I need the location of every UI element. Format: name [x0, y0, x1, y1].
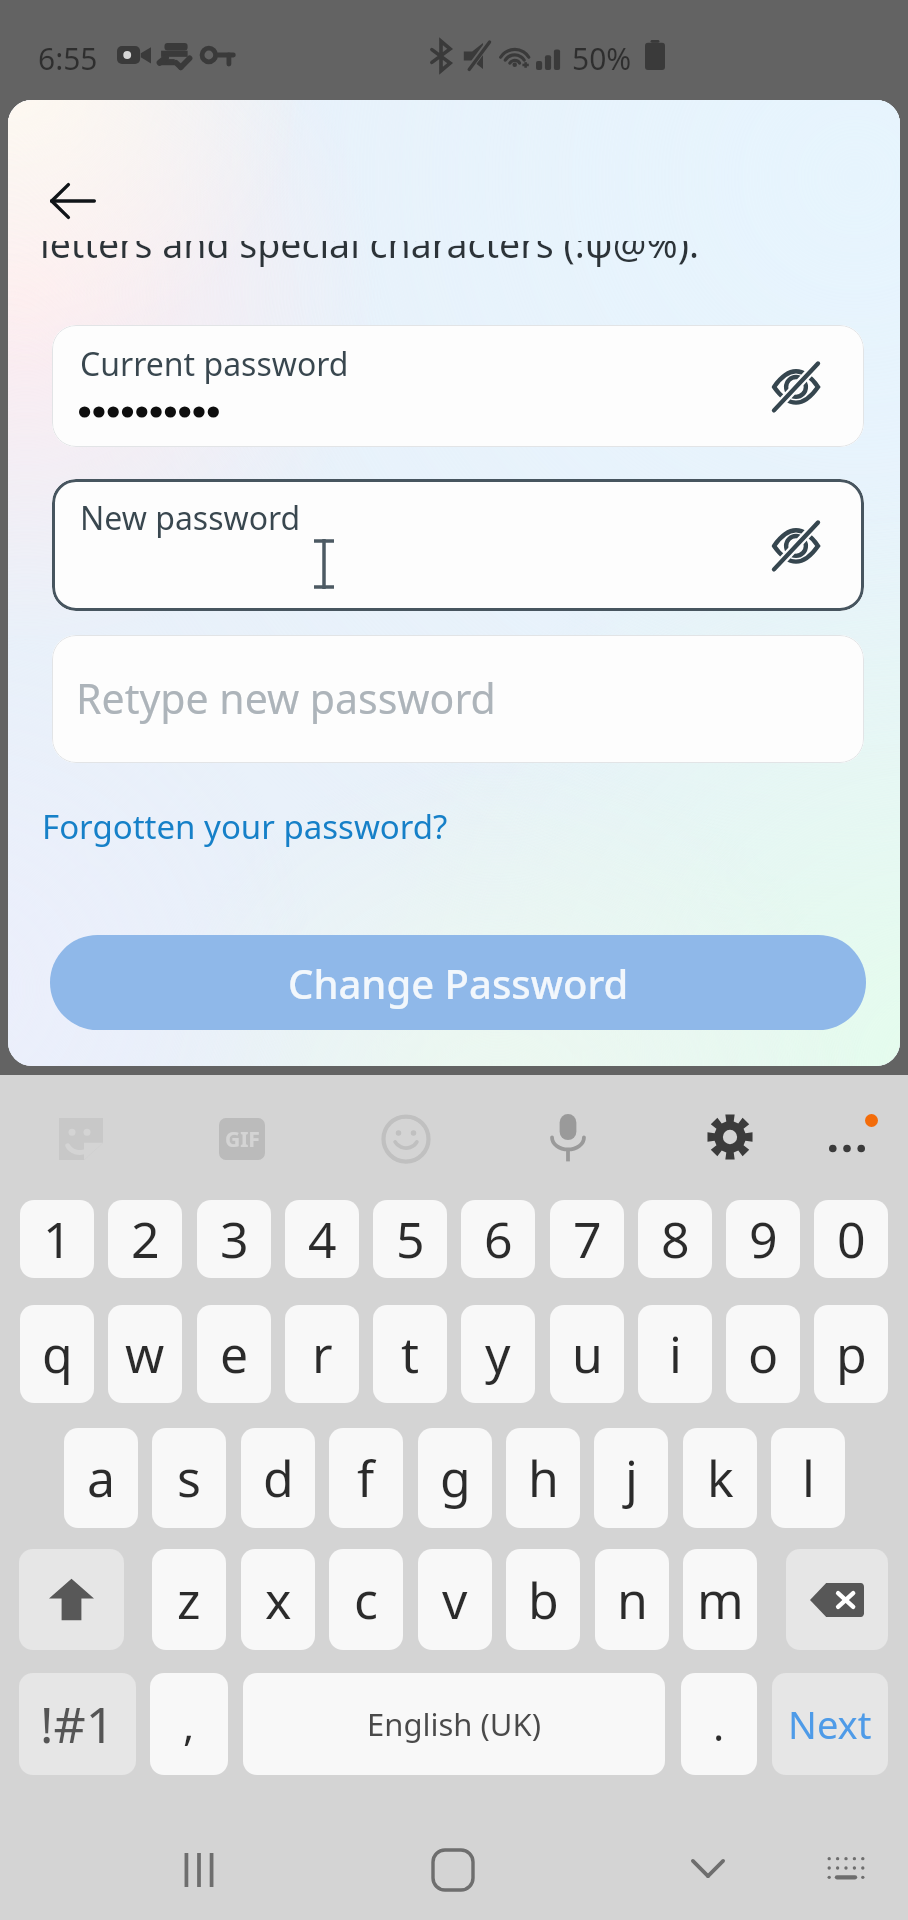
- staticText: 6: [484, 1205, 513, 1273]
- staticText: b: [528, 1566, 559, 1634]
- button[interactable]: z: [152, 1549, 226, 1650]
- button[interactable]: Current password: [52, 325, 864, 447]
- button[interactable]: k: [683, 1428, 757, 1528]
- button[interactable]: v: [418, 1549, 492, 1650]
- button[interactable]: Hide keyboard: [653, 1818, 763, 1918]
- staticText: z: [177, 1566, 201, 1634]
- staticText: c: [354, 1566, 378, 1634]
- staticText: 2: [131, 1205, 160, 1273]
- button[interactable]: 2: [108, 1200, 182, 1278]
- button[interactable]: Forgotten your password?: [42, 804, 448, 849]
- button[interactable]: More options: [810, 1109, 888, 1165]
- staticText: Forgotten your password?: [42, 804, 448, 849]
- staticText: 6:55: [38, 38, 98, 79]
- button[interactable]: x: [241, 1549, 315, 1650]
- button[interactable]: Change Password: [50, 935, 866, 1030]
- button[interactable]: q: [20, 1305, 94, 1403]
- button[interactable]: Backspace: [786, 1549, 888, 1650]
- button[interactable]: 5: [373, 1200, 447, 1278]
- button[interactable]: w: [108, 1305, 182, 1403]
- staticText: !#1: [40, 1690, 115, 1758]
- staticText: 9: [749, 1205, 778, 1273]
- button[interactable]: 9: [726, 1200, 800, 1278]
- button[interactable]: o: [726, 1305, 800, 1403]
- button[interactable]: 8: [638, 1200, 712, 1278]
- button[interactable]: Retype new password: [52, 635, 864, 763]
- staticText: .: [713, 1696, 725, 1753]
- button[interactable]: Change keyboard: [791, 1818, 901, 1918]
- staticText: New password: [80, 496, 301, 540]
- button[interactable]: English (UK): [243, 1673, 665, 1775]
- staticText: GIF: [225, 1125, 260, 1154]
- staticText: 1: [43, 1205, 72, 1273]
- button[interactable]: Next: [772, 1673, 888, 1775]
- button[interactable]: f: [329, 1428, 403, 1528]
- staticText: s: [177, 1444, 201, 1512]
- staticText: j: [625, 1444, 638, 1512]
- staticText: w: [125, 1320, 165, 1388]
- staticText: p: [836, 1320, 867, 1388]
- button[interactable]: r: [285, 1305, 359, 1403]
- button[interactable]: e: [197, 1305, 271, 1403]
- staticText: n: [617, 1566, 648, 1634]
- staticText: Next: [788, 1698, 872, 1750]
- staticText: d: [263, 1444, 294, 1512]
- button[interactable]: n: [595, 1549, 669, 1650]
- button[interactable]: 4: [285, 1200, 359, 1278]
- staticText: v: [442, 1566, 468, 1634]
- button[interactable]: Shift: [19, 1549, 124, 1650]
- button[interactable]: s: [152, 1428, 226, 1528]
- button[interactable]: b: [506, 1549, 580, 1650]
- button[interactable]: j: [594, 1428, 668, 1528]
- staticText: Retype new password: [76, 670, 496, 726]
- button[interactable]: !#1: [19, 1673, 136, 1775]
- button[interactable]: ,: [150, 1673, 228, 1775]
- staticText: 3: [220, 1205, 249, 1273]
- button[interactable]: t: [373, 1305, 447, 1403]
- button[interactable]: a: [64, 1428, 138, 1528]
- staticText: r: [312, 1320, 333, 1388]
- button[interactable]: y: [461, 1305, 535, 1403]
- button[interactable]: Back: [28, 156, 118, 246]
- button[interactable]: Show password: [756, 346, 836, 426]
- staticText: ,: [183, 1696, 195, 1753]
- button[interactable]: Home: [398, 1820, 508, 1920]
- staticText: q: [42, 1320, 73, 1388]
- button[interactable]: p: [814, 1305, 888, 1403]
- button[interactable]: m: [683, 1549, 757, 1650]
- staticText: a: [87, 1444, 116, 1512]
- button[interactable]: 0: [814, 1200, 888, 1278]
- button[interactable]: Show password: [756, 505, 836, 585]
- button[interactable]: Keyboard settings: [702, 1109, 758, 1165]
- staticText: x: [265, 1566, 292, 1634]
- button[interactable]: Recents: [144, 1820, 254, 1920]
- button[interactable]: i: [638, 1305, 712, 1403]
- button[interactable]: h: [506, 1428, 580, 1528]
- staticText: t: [401, 1320, 420, 1388]
- staticText: English (UK): [367, 1703, 541, 1745]
- staticText: 5: [396, 1205, 425, 1273]
- staticText: l: [802, 1444, 815, 1512]
- staticText: y: [485, 1320, 511, 1388]
- button[interactable]: 6: [461, 1200, 535, 1278]
- staticText: e: [220, 1320, 249, 1388]
- staticText: 50%: [572, 38, 632, 79]
- staticText: Change Password: [288, 956, 629, 1010]
- staticText: k: [707, 1444, 734, 1512]
- staticText: u: [572, 1320, 603, 1388]
- button[interactable]: 7: [550, 1200, 624, 1278]
- button[interactable]: d: [241, 1428, 315, 1528]
- button[interactable]: u: [550, 1305, 624, 1403]
- button[interactable]: .: [681, 1673, 757, 1775]
- button[interactable]: l: [771, 1428, 845, 1528]
- button[interactable]: 3: [197, 1200, 271, 1278]
- button[interactable]: g: [418, 1428, 492, 1528]
- button[interactable]: New password: [52, 479, 864, 611]
- staticText: f: [357, 1444, 375, 1512]
- staticText: letters and special characters (:ψ@%).: [40, 218, 700, 269]
- staticText: 4: [308, 1205, 337, 1273]
- button[interactable]: c: [329, 1549, 403, 1650]
- button[interactable]: 1: [20, 1200, 94, 1278]
- staticText: o: [748, 1320, 779, 1388]
- staticText: Current password: [80, 342, 349, 386]
